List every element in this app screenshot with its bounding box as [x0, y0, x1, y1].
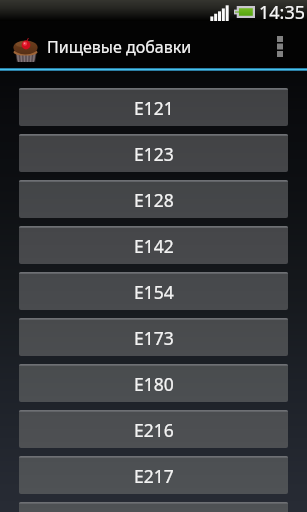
button[interactable]: E217 [19, 456, 288, 494]
button[interactable]: E154 [19, 272, 288, 310]
button[interactable]: More options [261, 23, 299, 70]
staticText: Пищевые добавки [47, 36, 192, 58]
staticText: E121 [134, 96, 174, 120]
staticText: E128 [134, 188, 174, 212]
staticText: E217 [134, 464, 174, 488]
staticText: E180 [134, 372, 174, 396]
staticText: E216 [134, 418, 174, 442]
button[interactable]: E216 [19, 410, 288, 448]
button[interactable]: E180 [19, 364, 288, 402]
button[interactable]: E123 [19, 134, 288, 172]
staticText: E154 [134, 280, 174, 304]
staticText: E142 [134, 234, 174, 258]
staticText: E173 [134, 326, 174, 350]
button[interactable]: E142 [19, 226, 288, 264]
button[interactable]: E121 [19, 88, 288, 126]
button[interactable]: E128 [19, 180, 288, 218]
button[interactable]: E219 [19, 502, 288, 512]
staticText: E123 [134, 142, 174, 166]
staticText: 14:35 [259, 0, 306, 21]
button[interactable]: E173 [19, 318, 288, 356]
